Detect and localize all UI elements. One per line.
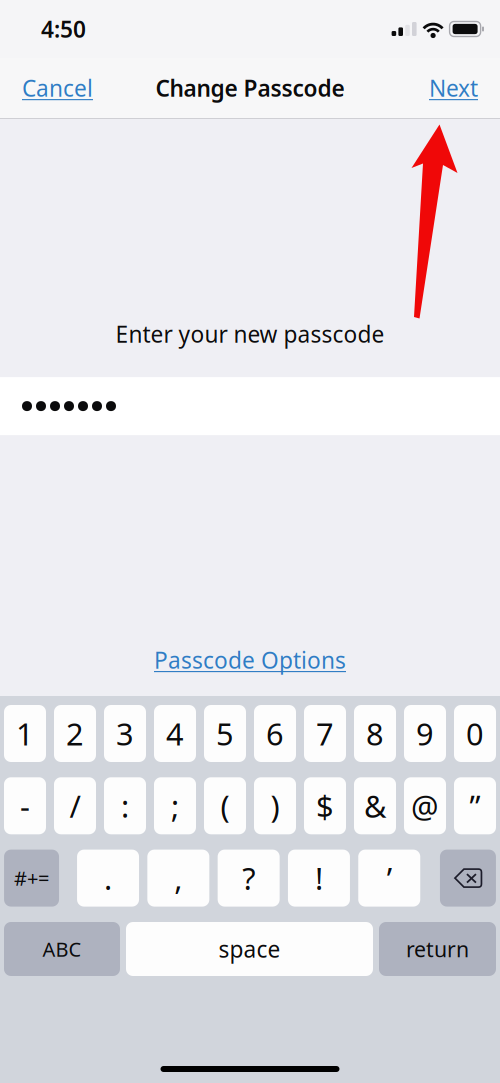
button[interactable]: 5: [204, 705, 246, 762]
staticText: 6: [266, 713, 284, 754]
staticText: ): [270, 785, 279, 826]
staticText: -: [20, 785, 30, 826]
button[interactable]: -: [4, 777, 46, 834]
staticText: Cancel: [22, 73, 93, 103]
staticText: $: [316, 785, 334, 826]
staticText: ;: [171, 785, 179, 826]
button[interactable]: 4: [154, 705, 196, 762]
button[interactable]: Cancel: [0, 61, 107, 115]
staticText: ”: [469, 785, 480, 826]
button[interactable]: ’: [358, 850, 420, 907]
button[interactable]: Next: [415, 61, 500, 115]
staticText: Next: [429, 73, 478, 103]
button[interactable]: @: [404, 777, 446, 834]
button[interactable]: ”: [454, 777, 496, 834]
button[interactable]: Passcode Options: [144, 639, 356, 681]
staticText: (: [220, 785, 229, 826]
button[interactable]: 0: [454, 705, 496, 762]
button[interactable]: 1: [4, 705, 46, 762]
staticText: /: [69, 785, 80, 826]
button[interactable]: 8: [354, 705, 396, 762]
staticText: 2: [66, 713, 84, 754]
button[interactable]: (: [204, 777, 246, 834]
staticText: .: [104, 858, 112, 898]
button[interactable]: 2: [54, 705, 96, 762]
staticText: 5: [216, 713, 234, 754]
staticText: &: [364, 785, 386, 826]
staticText: return: [406, 935, 469, 963]
staticText: Passcode Options: [154, 645, 346, 675]
staticText: #+=: [14, 865, 49, 891]
button[interactable]: 7: [304, 705, 346, 762]
staticText: 3: [116, 713, 134, 754]
button[interactable]: .: [77, 850, 139, 907]
button[interactable]: ,: [147, 850, 209, 907]
button[interactable]: ABC: [4, 922, 120, 976]
staticText: ?: [242, 858, 255, 898]
staticText: 7: [316, 713, 334, 754]
staticText: 4: [166, 713, 184, 754]
staticText: !: [315, 858, 323, 898]
staticText: @: [411, 785, 439, 826]
staticText: :: [121, 785, 129, 826]
button[interactable]: ?: [218, 850, 280, 907]
staticText: ’: [387, 858, 392, 898]
button[interactable]: &: [354, 777, 396, 834]
staticText: 4:50: [41, 14, 86, 44]
button[interactable]: return: [379, 922, 496, 976]
button[interactable]: space: [126, 922, 373, 976]
staticText: Change Passcode: [155, 73, 344, 103]
button[interactable]: 3: [104, 705, 146, 762]
staticText: ,: [174, 858, 182, 898]
button[interactable]: Delete: [440, 850, 496, 907]
button[interactable]: !: [288, 850, 350, 907]
button[interactable]: 6: [254, 705, 296, 762]
button[interactable]: #+=: [4, 850, 59, 907]
button[interactable]: ;: [154, 777, 196, 834]
staticText: space: [218, 934, 280, 964]
button[interactable]: :: [104, 777, 146, 834]
staticText: Enter your new passcode: [115, 319, 384, 349]
staticText: ABC: [42, 936, 81, 962]
button[interactable]: $: [304, 777, 346, 834]
button[interactable]: 9: [404, 705, 446, 762]
staticText: 9: [416, 713, 434, 754]
staticText: 1: [16, 713, 34, 754]
staticText: 0: [466, 713, 484, 754]
button[interactable]: ): [254, 777, 296, 834]
staticText: 8: [366, 713, 384, 754]
button[interactable]: /: [54, 777, 96, 834]
